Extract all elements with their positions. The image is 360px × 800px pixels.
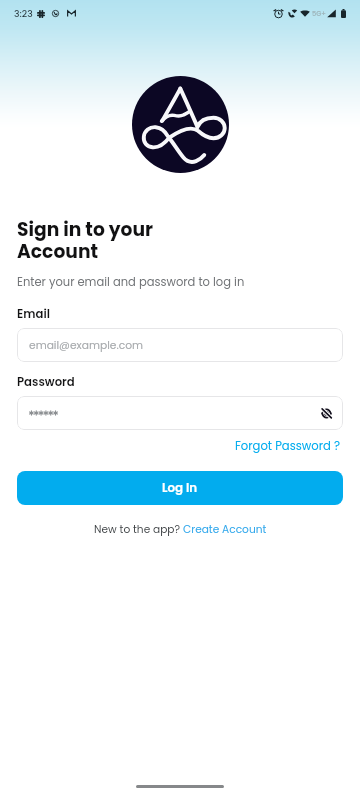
staticText: 5G+ (312, 9, 327, 18)
staticText: Email (17, 306, 50, 322)
button[interactable]: Log In (17, 471, 343, 505)
staticText: Password (17, 374, 75, 390)
button[interactable]: Show password (317, 404, 335, 422)
button[interactable]: email@example.com (17, 328, 343, 362)
button[interactable]: Forgot Password ? (233, 437, 343, 455)
staticText: Sign in to your Account (17, 216, 154, 265)
button[interactable]: Create Account (183, 522, 267, 537)
staticText: Log In (162, 480, 198, 497)
staticText: Enter your email and password to log in (17, 274, 245, 290)
staticText: email@example.com (29, 338, 143, 353)
button[interactable]: Show password (17, 396, 343, 430)
staticText: New to the app? (94, 522, 183, 537)
staticText: 3:23 (14, 7, 33, 20)
